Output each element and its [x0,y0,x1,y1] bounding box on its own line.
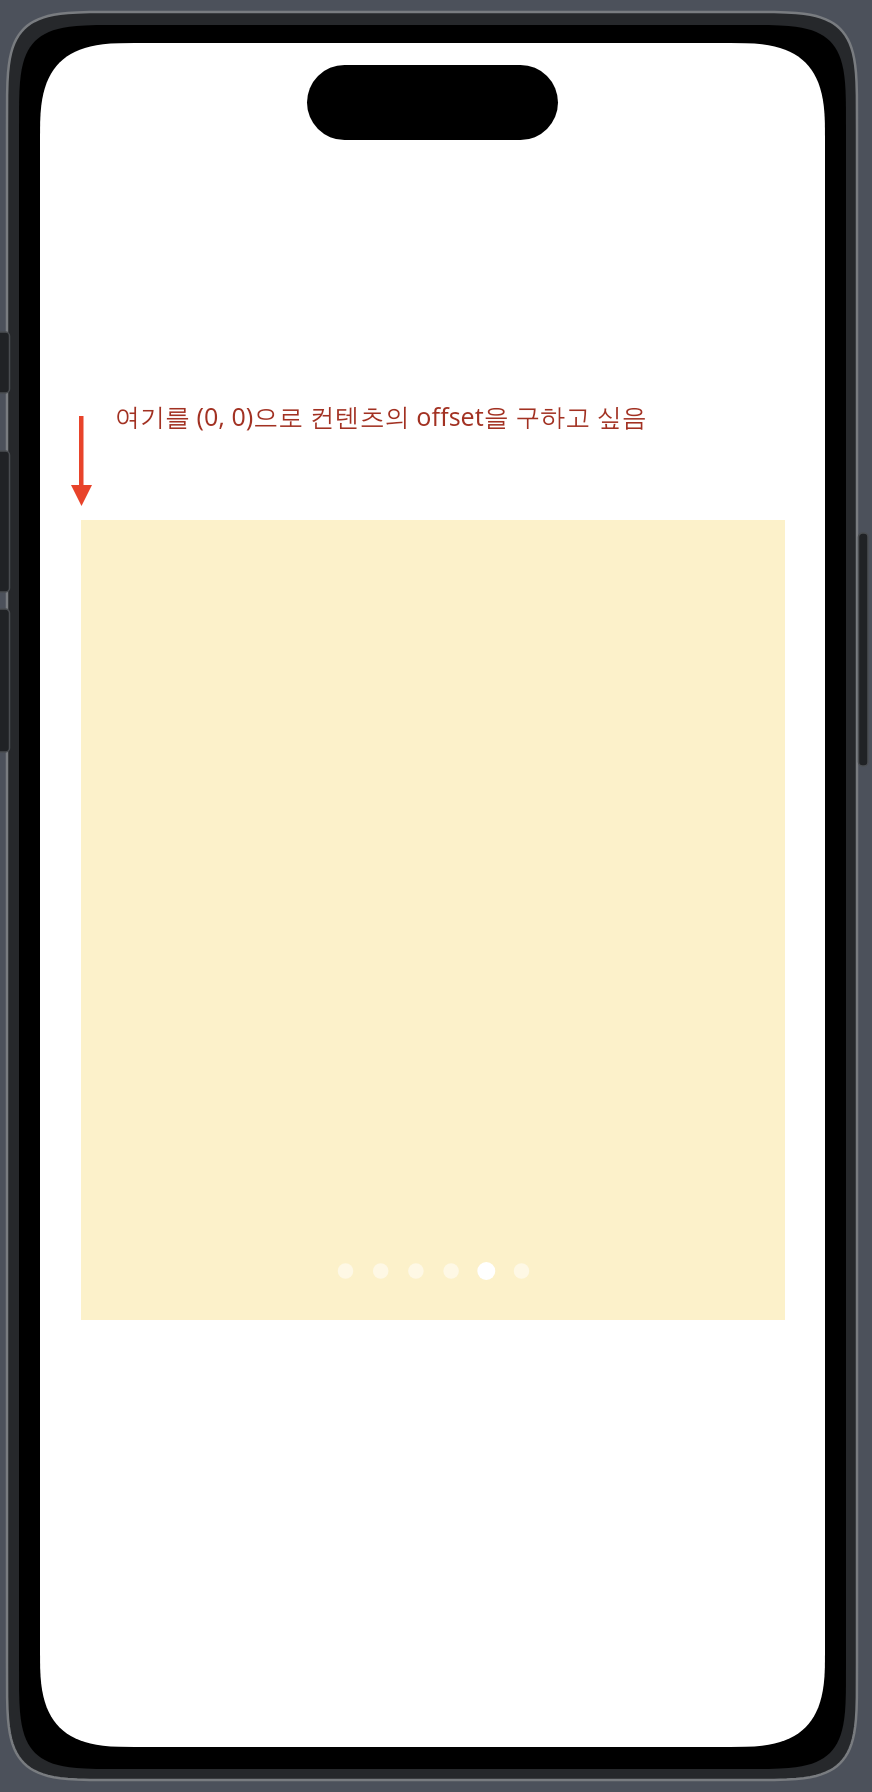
staticText: 여기를 (0, 0)으로 컨텐츠의 offset을 구하고 싶음 [115,399,647,433]
